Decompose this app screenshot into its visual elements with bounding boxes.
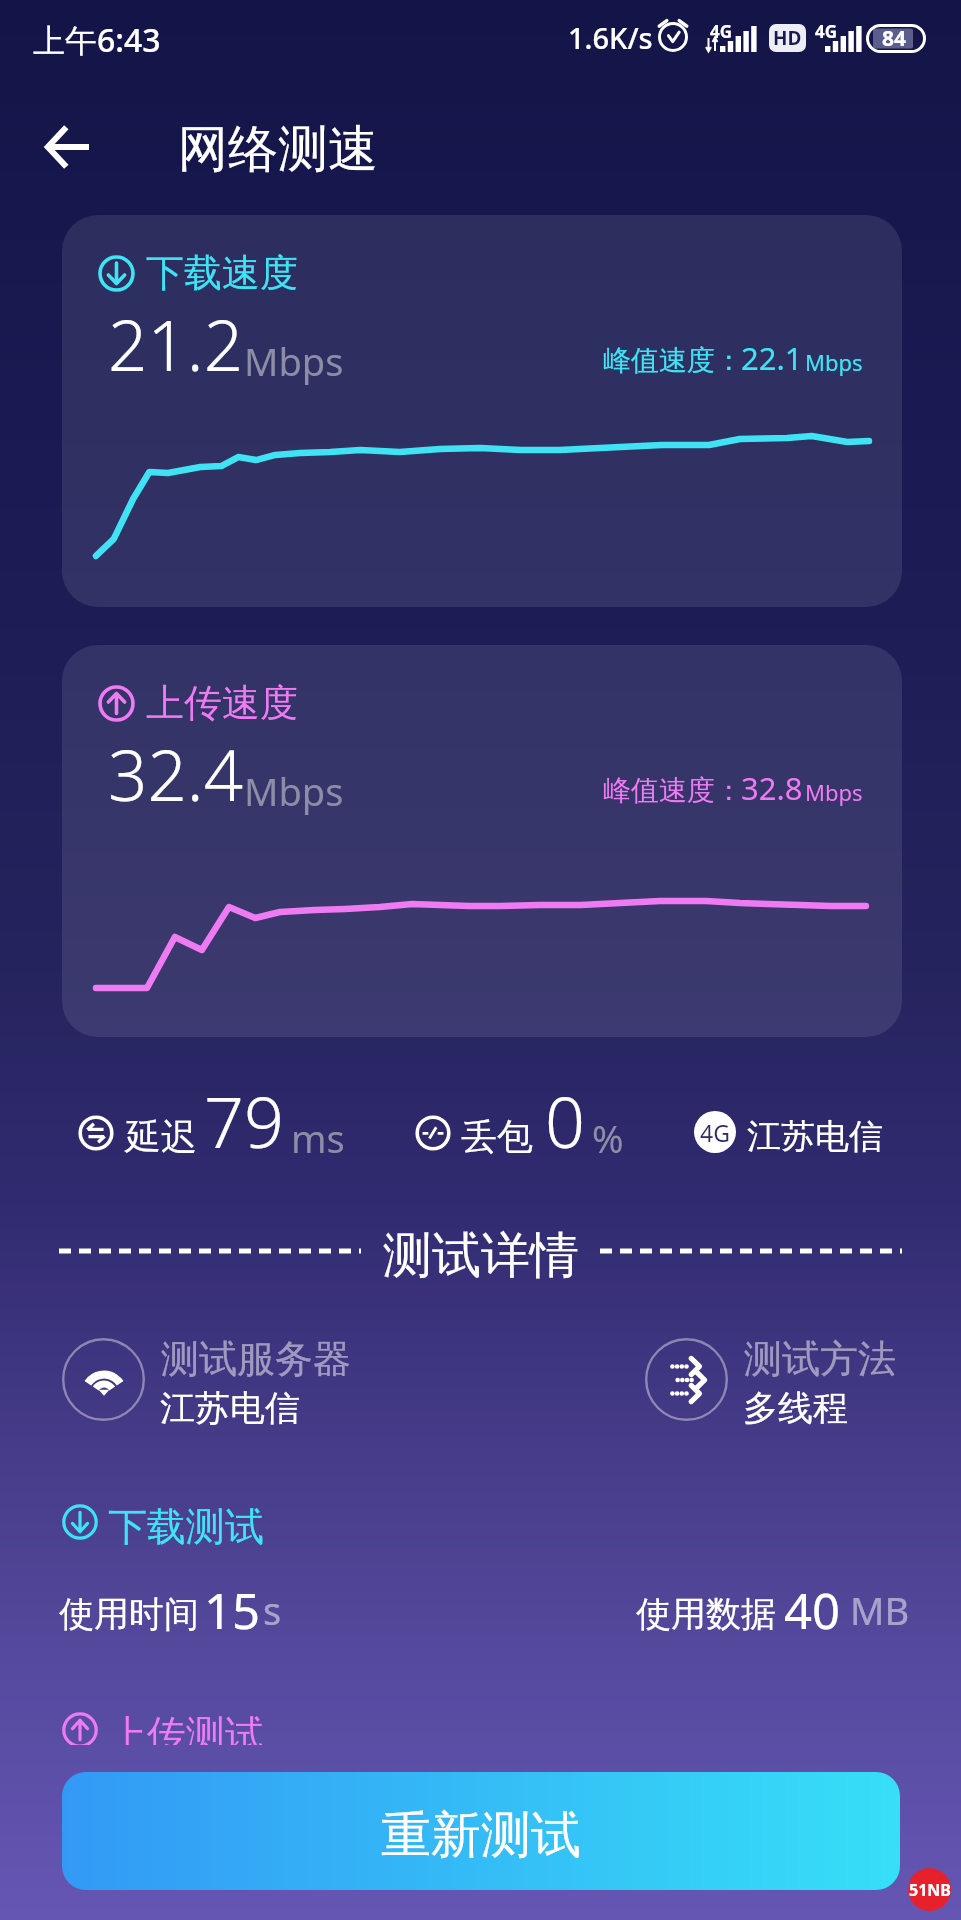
staticText: 84: [882, 24, 907, 53]
staticText: 上传测试: [108, 1710, 264, 1745]
staticText: 测试服务器: [161, 1335, 351, 1383]
staticText: 21.2: [108, 297, 244, 391]
staticText: 多线程: [743, 1386, 848, 1430]
staticText: 32.8: [741, 767, 803, 809]
staticText: 22.1: [741, 337, 803, 379]
staticText: 51NB: [909, 1879, 951, 1901]
staticText: 峰值速度：: [603, 343, 743, 378]
staticText: Mbps: [805, 777, 863, 807]
staticText: 使用时间: [59, 1592, 199, 1636]
staticText: 4G: [710, 20, 733, 43]
staticText: 丢包: [461, 1114, 533, 1159]
staticText: 4G: [700, 1117, 730, 1148]
staticText: 0: [545, 1073, 585, 1165]
staticText: 延迟: [125, 1114, 197, 1159]
staticText: 测试方法: [744, 1335, 896, 1383]
staticText: 上午6:43: [33, 18, 161, 62]
staticText: 下载测试: [108, 1502, 264, 1551]
staticText: 使用数据: [636, 1592, 776, 1636]
button[interactable]: Back: [28, 107, 108, 187]
staticText: 4G: [815, 20, 838, 43]
staticText: 40: [784, 1577, 841, 1644]
staticText: MB: [850, 1584, 910, 1636]
staticText: 江苏电信: [160, 1386, 300, 1430]
staticText: Mbps: [244, 765, 344, 817]
staticText: 32.4: [108, 727, 244, 821]
staticText: ms: [291, 1112, 345, 1164]
staticText: s: [263, 1584, 282, 1636]
staticText: 重新测试: [381, 1804, 581, 1867]
staticText: 15: [204, 1577, 261, 1644]
staticText: 上传速度: [146, 679, 298, 727]
staticText: 网络测速: [178, 118, 378, 181]
staticText: 1.6K/s: [568, 18, 653, 57]
staticText: 79: [204, 1073, 284, 1165]
staticText: 下载速度: [146, 249, 298, 297]
staticText: Mbps: [244, 335, 344, 387]
staticText: 测试详情: [383, 1225, 579, 1287]
staticText: 峰值速度：: [603, 773, 743, 808]
staticText: HD: [773, 25, 802, 51]
button[interactable]: 重新测试: [62, 1772, 900, 1890]
staticText: 江苏电信: [747, 1115, 883, 1158]
staticText: Mbps: [805, 347, 863, 377]
staticText: %: [592, 1112, 624, 1164]
